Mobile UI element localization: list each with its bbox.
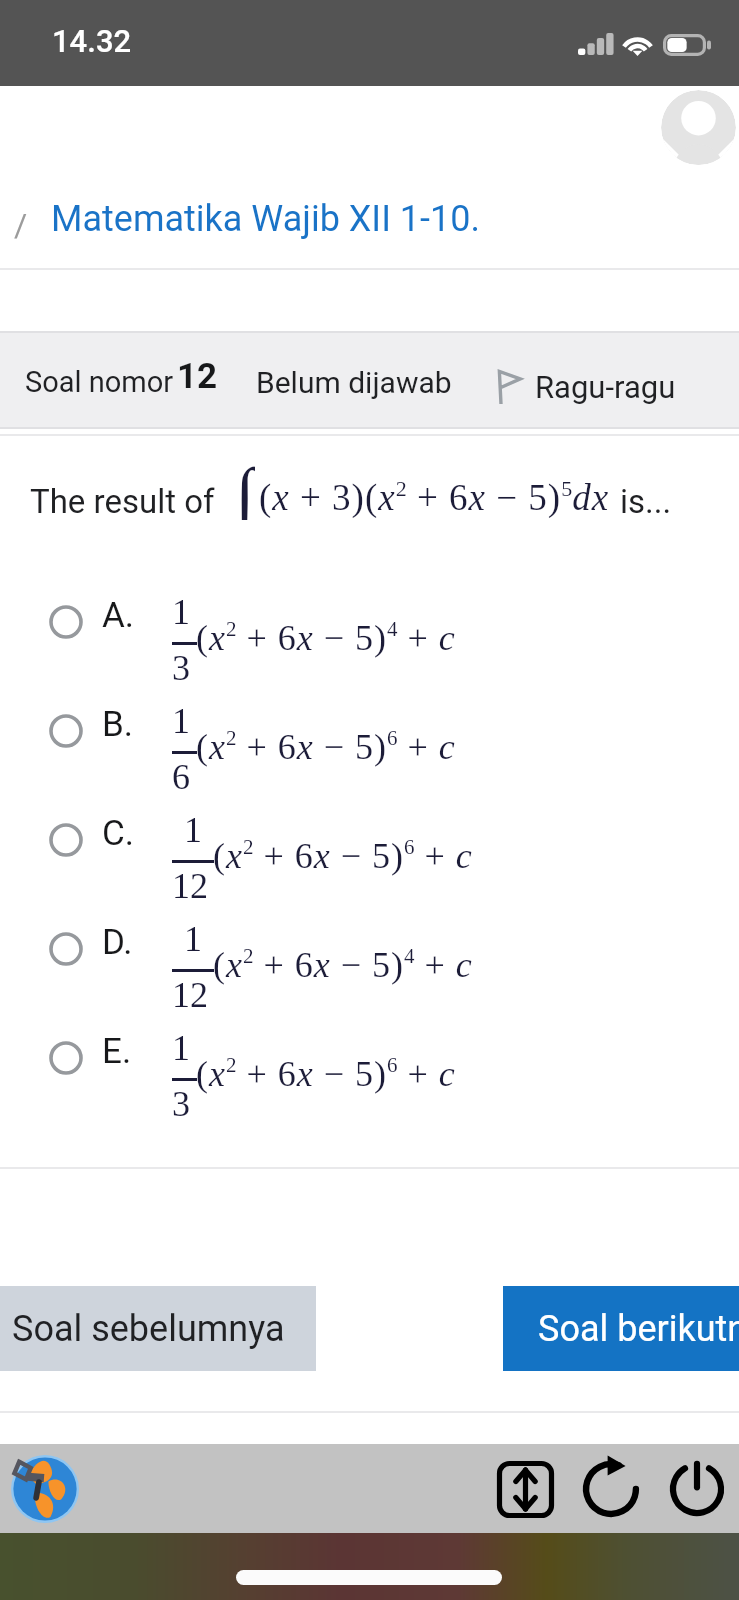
button[interactable]: Ragu-ragu — [492, 357, 676, 417]
staticText: Matematika Wajib XII 1-10. — [51, 198, 480, 240]
staticText: 12 — [172, 975, 208, 1015]
staticText: is... — [620, 482, 672, 521]
button[interactable]: Account — [661, 90, 736, 165]
staticText: 1 — [172, 701, 190, 741]
staticText: 1 — [184, 919, 202, 959]
staticText: E. — [102, 1031, 132, 1072]
staticText: 3 — [172, 1084, 190, 1124]
staticText: 1 — [172, 592, 190, 632]
button[interactable]: Soal berikutnya — [503, 1286, 739, 1371]
button[interactable]: B. — [0, 675, 739, 784]
staticText: Soal nomor — [25, 365, 174, 399]
staticText: 14.32 — [52, 23, 132, 59]
staticText: 1 — [172, 1028, 190, 1068]
staticText: (x + 3)(x2 + 6x − 5)5dx — [259, 476, 610, 518]
staticText: (x2 + 6x − 5)6 + c — [196, 1053, 456, 1093]
button[interactable]: Power — [661, 1453, 733, 1525]
staticText: Ragu-ragu — [535, 369, 676, 405]
staticText: Soal berikutnya — [538, 1308, 739, 1350]
staticText: Soal sebelumnya — [12, 1308, 285, 1350]
button[interactable]: Resize — [489, 1453, 561, 1525]
staticText: D. — [102, 922, 133, 963]
staticText: / — [14, 206, 28, 244]
button[interactable]: E. — [0, 1002, 739, 1111]
staticText: 12 — [172, 866, 208, 906]
staticText: 1 — [184, 810, 202, 850]
staticText: (x2 + 6x − 5)6 + c — [213, 835, 473, 875]
button[interactable]: Matematika Wajib XII 1-10. — [45, 192, 486, 246]
staticText: (x2 + 6x − 5)4 + c — [196, 617, 456, 657]
staticText: 12 — [177, 356, 218, 397]
button[interactable]: A. — [0, 566, 739, 675]
staticText: 3 — [172, 648, 190, 688]
button[interactable]: Soal sebelumnya — [0, 1286, 316, 1371]
staticText: Belum dijawab — [256, 365, 452, 400]
staticText: C. — [102, 813, 135, 854]
staticText: The result of — [30, 482, 215, 521]
staticText: A. — [102, 595, 135, 636]
staticText: (x2 + 6x − 5)6 + c — [196, 726, 456, 766]
button[interactable]: Refresh — [575, 1453, 647, 1525]
staticText: 6 — [172, 757, 190, 797]
button[interactable]: Browser — [11, 1455, 79, 1523]
staticText: ∫ — [235, 454, 255, 520]
staticText: (x2 + 6x − 5)4 + c — [213, 944, 473, 984]
staticText: B. — [102, 704, 134, 745]
button[interactable]: D. — [0, 893, 739, 1002]
button[interactable]: C. — [0, 784, 739, 893]
